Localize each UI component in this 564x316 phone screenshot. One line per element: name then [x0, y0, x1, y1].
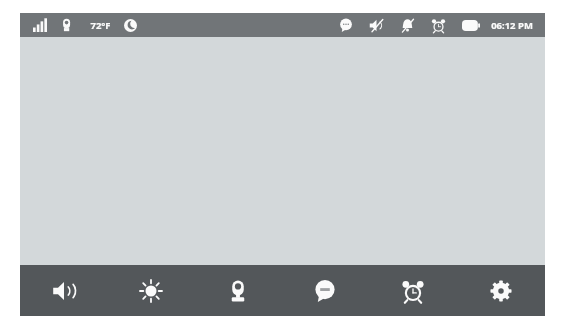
- staticText: 06:12 PM: [491, 19, 533, 32]
- button[interactable]: Camera: [194, 265, 281, 316]
- button[interactable]: Alarm: [369, 265, 457, 316]
- button[interactable]: VOX: [281, 265, 369, 316]
- staticText: 72°F: [90, 19, 111, 32]
- button[interactable]: Settings: [457, 265, 545, 316]
- button[interactable]: Brightness: [107, 265, 194, 316]
- button[interactable]: Volume: [20, 265, 107, 316]
